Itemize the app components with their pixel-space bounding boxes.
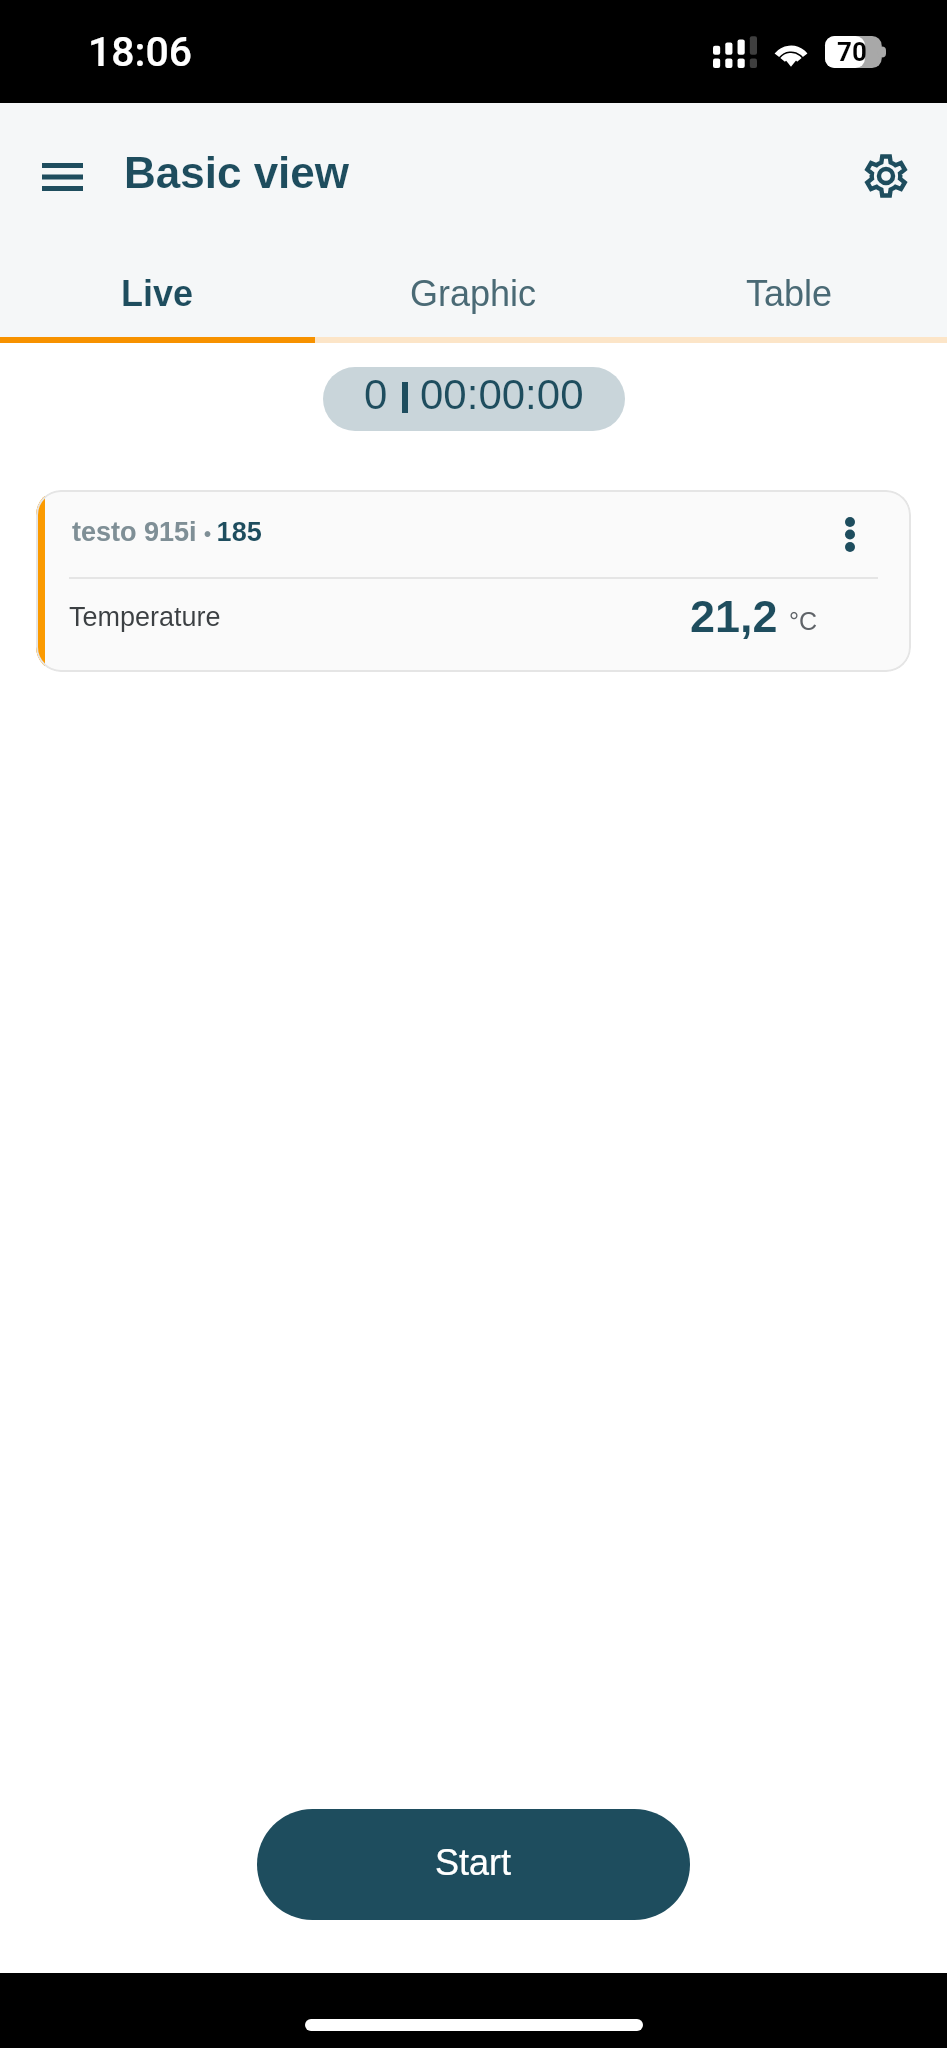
button[interactable]: Live xyxy=(0,234,315,337)
button[interactable]: Graphic xyxy=(315,234,631,337)
staticText: Graphic xyxy=(410,273,537,313)
staticText: 18:06 xyxy=(88,28,193,76)
staticText: testo 915i • 185 xyxy=(72,517,262,547)
staticText: Table xyxy=(746,273,833,313)
staticText: 0 xyxy=(364,371,388,418)
button[interactable]: More options xyxy=(823,507,877,561)
staticText: 21,2 xyxy=(690,591,778,641)
button[interactable]: testo 915i • 185 xyxy=(36,490,911,672)
button[interactable]: 0 xyxy=(323,367,625,431)
button[interactable]: Table xyxy=(631,234,947,337)
button[interactable]: Settings xyxy=(850,140,922,212)
staticText: °C xyxy=(789,607,818,635)
staticText: 70 xyxy=(837,37,867,67)
staticText: Temperature xyxy=(69,602,221,632)
button[interactable]: Menu xyxy=(21,136,103,218)
button[interactable]: Start xyxy=(257,1809,690,1920)
staticText: Start xyxy=(435,1842,512,1882)
staticText: Live xyxy=(121,273,194,313)
staticText: Basic view xyxy=(124,148,350,197)
staticText: 00:00:00 xyxy=(420,371,584,418)
